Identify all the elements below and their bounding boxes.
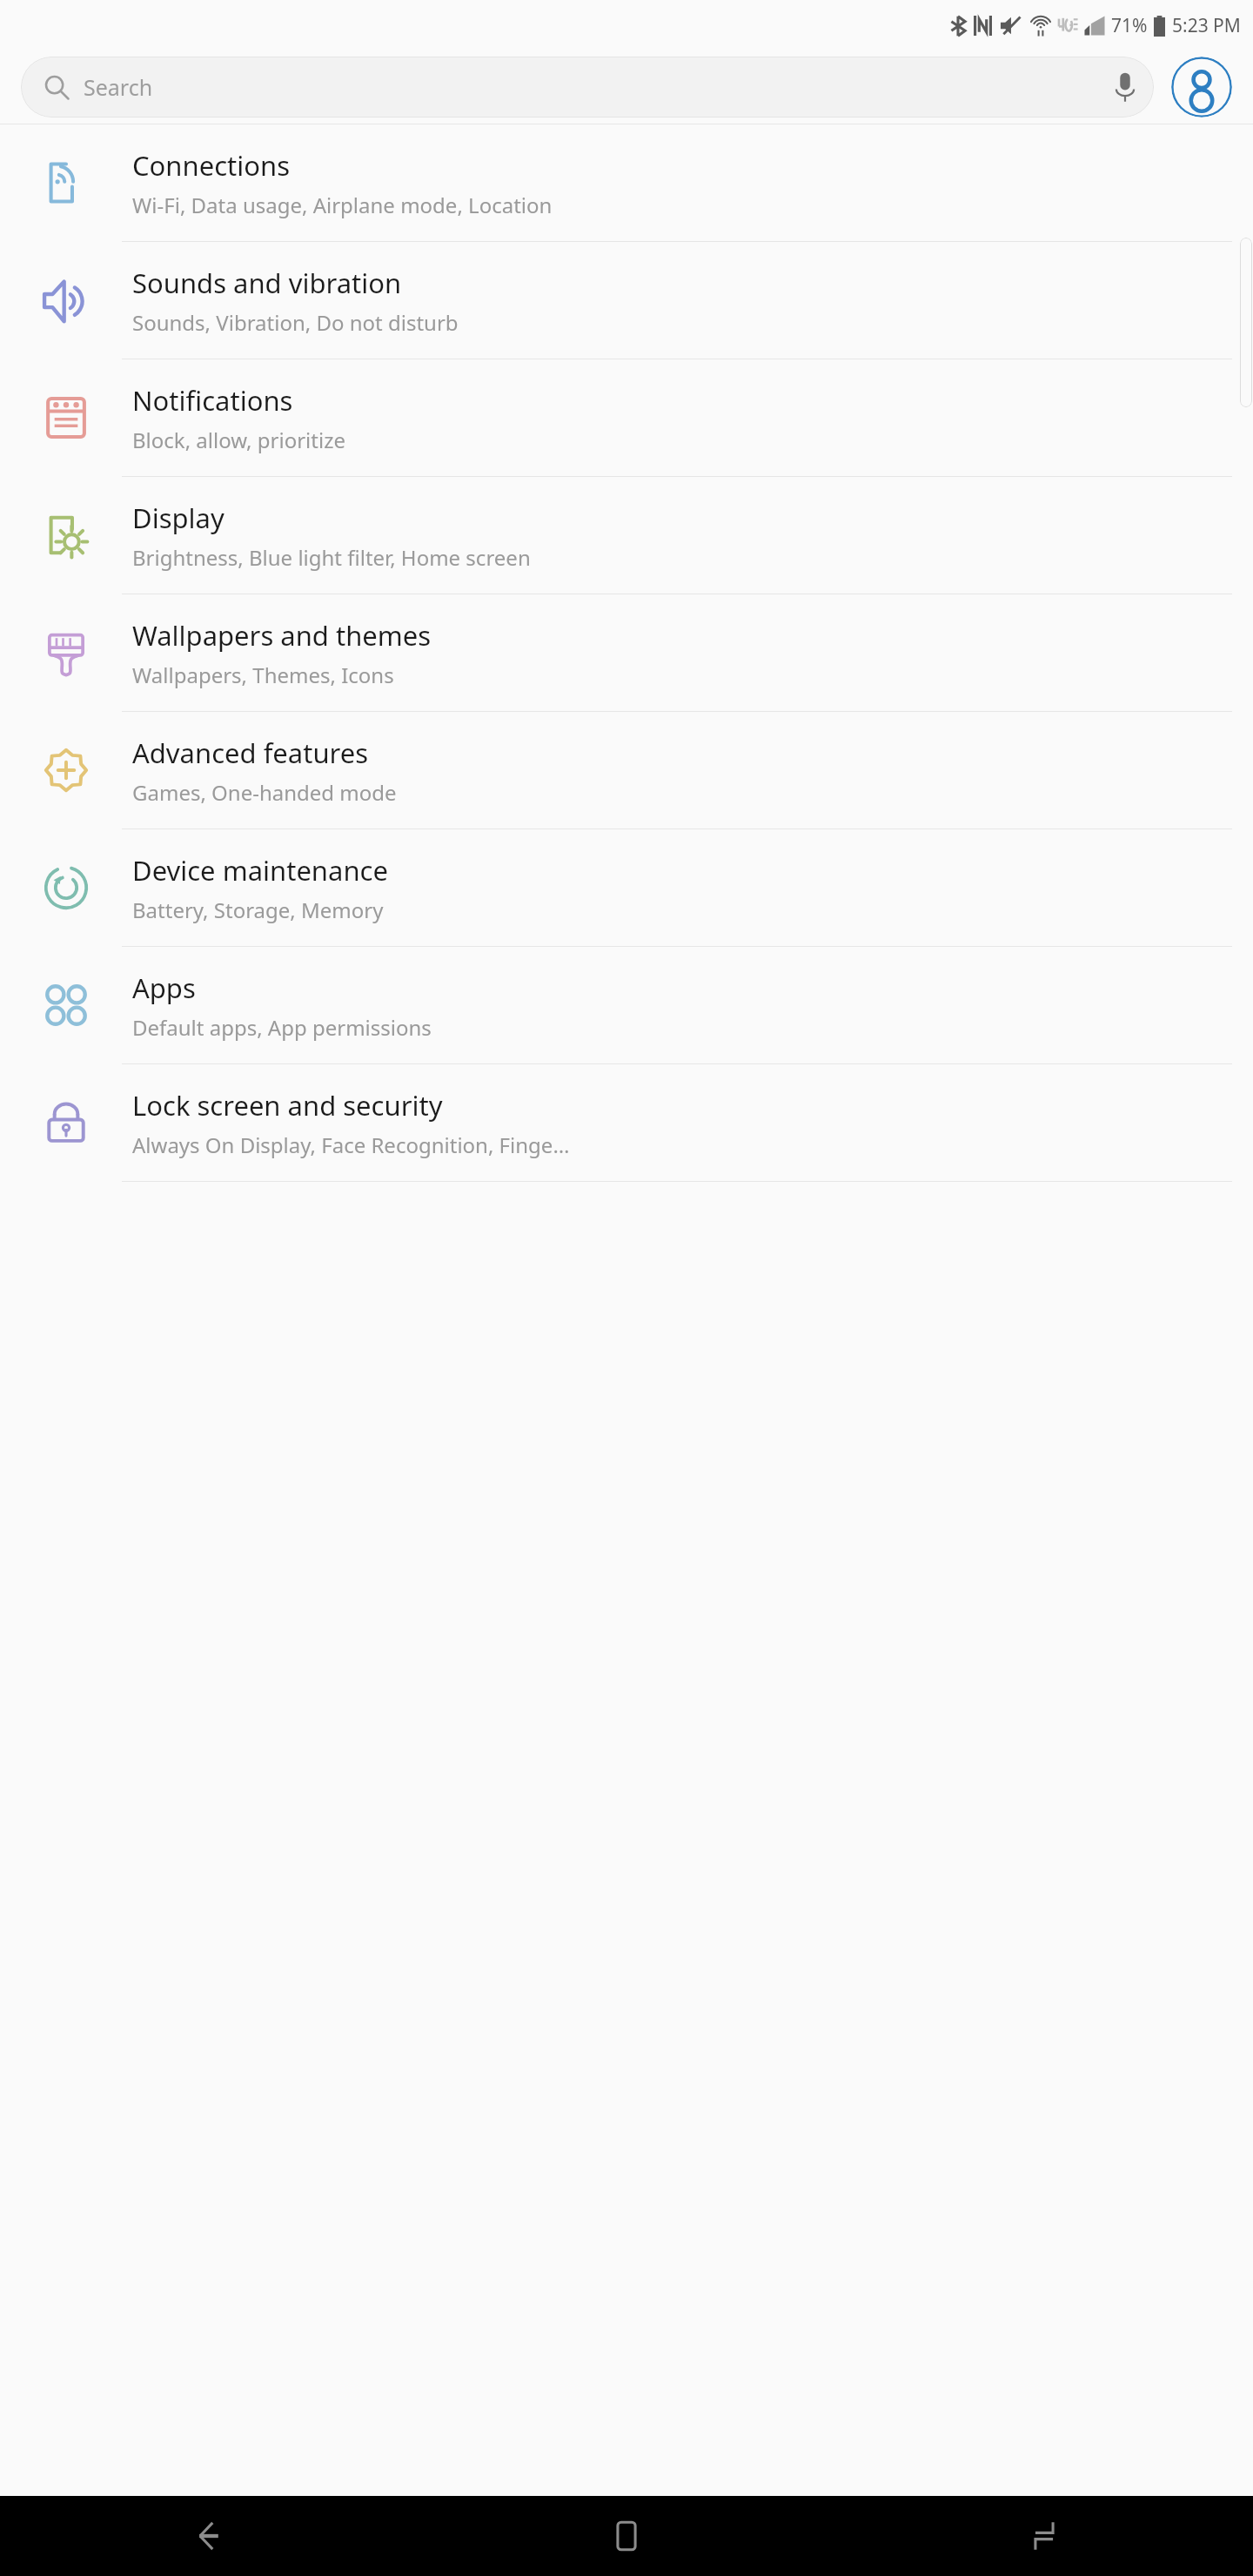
staticText: Connections (132, 147, 290, 184)
staticText: Search (84, 72, 1116, 102)
staticText: Advanced features (132, 735, 369, 771)
staticText: Always On Display, Face Recognition, Fin… (132, 1130, 570, 1159)
staticText: Games, One-handed mode (132, 778, 397, 807)
button[interactable]: Wallpapers and themes (0, 594, 1253, 712)
staticText: Sounds and vibration (132, 265, 402, 301)
staticText: Device maintenance (132, 852, 388, 889)
staticText: Sounds, Vibration, Do not disturb (132, 308, 459, 337)
button[interactable]: Apps (0, 947, 1253, 1064)
button[interactable]: Recents (835, 2496, 1253, 2576)
button[interactable]: Lock screen and security (0, 1064, 1253, 1182)
staticText: 71% (1111, 13, 1148, 38)
staticText: 5:23 PM (1172, 13, 1241, 38)
staticText: Wallpapers and themes (132, 617, 432, 654)
button[interactable]: Connections (0, 124, 1253, 242)
staticText: Default apps, App permissions (132, 1013, 432, 1042)
staticText: Wallpapers, Themes, Icons (132, 661, 394, 689)
button[interactable]: Display (0, 477, 1253, 594)
staticText: Brightness, Blue light filter, Home scre… (132, 543, 531, 572)
button[interactable]: Notifications (0, 359, 1253, 477)
button[interactable]: Back (0, 2496, 418, 2576)
button[interactable]: Home (418, 2496, 835, 2576)
button[interactable]: Account (1171, 57, 1232, 117)
button[interactable]: Sounds and vibration (0, 242, 1253, 359)
staticText: Display (132, 500, 224, 536)
staticText: Apps (132, 969, 196, 1006)
button[interactable]: Device maintenance (0, 829, 1253, 947)
button[interactable]: Search (21, 57, 1154, 117)
staticText: Wi-Fi, Data usage, Airplane mode, Locati… (132, 191, 553, 219)
button[interactable]: Advanced features (0, 712, 1253, 829)
staticText: Block, allow, prioritize (132, 426, 345, 454)
staticText: Battery, Storage, Memory (132, 896, 384, 924)
staticText: Lock screen and security (132, 1087, 443, 1124)
staticText: Notifications (132, 382, 293, 419)
